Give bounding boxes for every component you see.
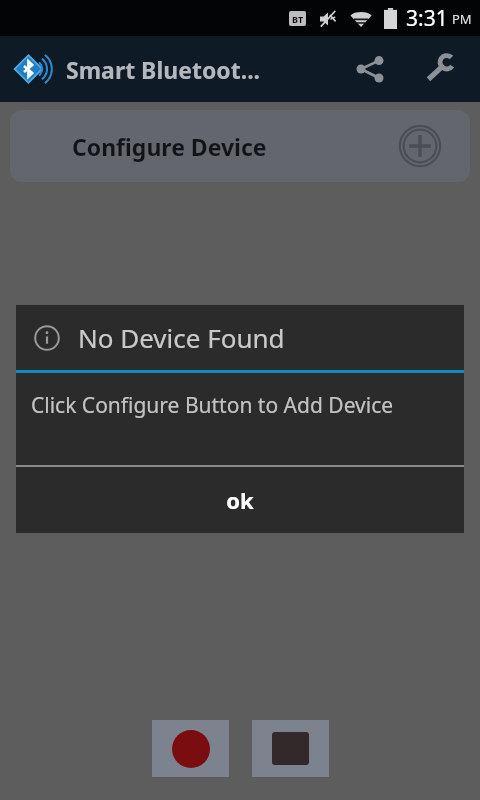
staticText: Smart Bluetoot... xyxy=(66,54,261,85)
staticText: 3:31 xyxy=(406,4,448,33)
staticText: Click Configure Button to Add Device xyxy=(31,391,394,420)
button[interactable]: Settings xyxy=(414,43,466,95)
staticText: No Device Found xyxy=(78,320,285,355)
staticText: PM xyxy=(452,10,472,28)
button[interactable]: ok xyxy=(16,467,464,533)
button[interactable]: Share xyxy=(344,43,396,95)
staticText: Configure Device xyxy=(72,131,267,162)
button[interactable]: Stop xyxy=(252,720,329,777)
button[interactable]: Record xyxy=(152,720,229,777)
button[interactable]: Configure Device xyxy=(10,110,470,182)
staticText: BT xyxy=(292,13,304,25)
staticText: ok xyxy=(226,485,254,515)
